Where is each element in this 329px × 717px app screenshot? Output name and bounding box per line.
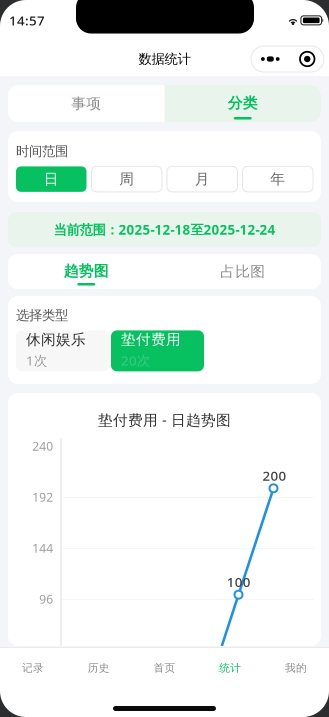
button[interactable]: 年 (242, 166, 313, 192)
staticText: 数据统计 (138, 51, 190, 67)
staticText: 时间范围 (16, 143, 68, 159)
staticText: 事项 (71, 94, 101, 112)
staticText: 200 (262, 467, 286, 484)
staticText: 1次 (26, 351, 47, 369)
staticText: 96 (39, 591, 53, 607)
button[interactable]: 首页 (132, 648, 197, 688)
staticText: 趋势图 (64, 262, 109, 280)
staticText: 占比图 (220, 262, 265, 280)
staticText: 历史 (88, 661, 110, 674)
staticText: 当前范围：2025-12-18至2025-12-24 (53, 221, 275, 238)
button[interactable]: 日 (16, 166, 86, 192)
staticText: 日 (44, 170, 59, 188)
staticText: 我的 (285, 661, 307, 674)
button[interactable]: 占比图 (164, 254, 321, 289)
staticText: 分类 (228, 94, 258, 112)
staticText: 垫付费用 - 日趋势图 (98, 410, 231, 429)
staticText: 月 (195, 170, 210, 188)
staticText: 选择类型 (16, 307, 68, 323)
staticText: 垫付费用 (121, 330, 181, 348)
staticText: 统计 (219, 661, 241, 674)
staticText: 周 (119, 170, 134, 188)
button[interactable]: 月 (167, 166, 237, 192)
staticText: 240 (32, 438, 53, 454)
staticText: 14:57 (9, 11, 45, 29)
staticText: 20次 (121, 351, 150, 369)
button[interactable]: 趋势图 (8, 254, 164, 289)
button[interactable]: 我的 (263, 648, 329, 688)
staticText: 144 (32, 540, 53, 556)
button[interactable]: 菜单 (251, 46, 324, 72)
staticText: 192 (32, 489, 53, 505)
staticText: 100 (227, 573, 251, 591)
staticText: 休闲娱乐 (26, 330, 86, 348)
button[interactable]: 记录 (0, 648, 66, 688)
button[interactable]: 垫付费用 (111, 330, 204, 371)
staticText: 年 (270, 170, 285, 188)
button[interactable]: 事项 (8, 85, 164, 122)
button[interactable]: 历史 (66, 648, 132, 688)
button[interactable]: 统计 (197, 648, 263, 688)
button[interactable]: 分类 (164, 85, 321, 122)
button[interactable]: 休闲娱乐 (16, 330, 109, 371)
staticText: 首页 (153, 661, 175, 674)
staticText: 记录 (22, 661, 44, 674)
button[interactable]: 周 (91, 166, 162, 192)
